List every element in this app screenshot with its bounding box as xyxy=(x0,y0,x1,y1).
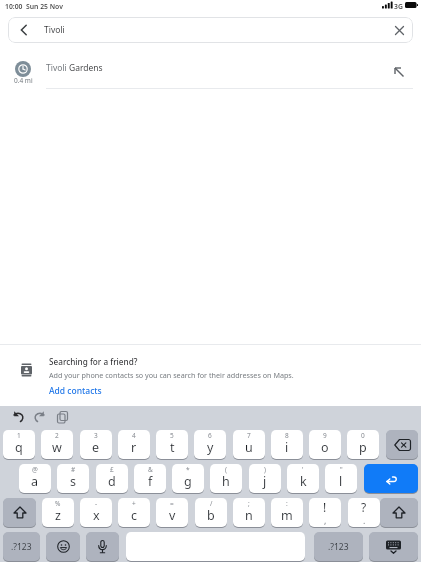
staticText: p xyxy=(359,439,367,456)
staticText: u xyxy=(245,439,253,456)
staticText: m xyxy=(281,507,293,524)
staticText: b xyxy=(207,507,215,524)
staticText: * xyxy=(186,465,190,474)
staticText: i xyxy=(285,439,289,456)
button[interactable]: 5 xyxy=(156,430,188,459)
button[interactable] xyxy=(33,410,47,424)
button[interactable]: ; xyxy=(233,498,265,527)
button[interactable] xyxy=(369,532,418,561)
button[interactable]: " xyxy=(325,464,357,493)
staticText: a xyxy=(31,473,39,490)
button[interactable] xyxy=(3,498,36,527)
staticText: Tivoli xyxy=(44,24,65,36)
staticText: 3G xyxy=(394,2,403,11)
staticText: 0 xyxy=(361,431,365,440)
staticText: z xyxy=(55,507,61,524)
button[interactable]: - xyxy=(80,498,112,527)
button[interactable] xyxy=(380,498,418,527)
staticText: n xyxy=(245,507,253,524)
button[interactable]: Add contacts xyxy=(49,383,102,395)
staticText: # xyxy=(71,465,76,474)
staticText: s xyxy=(70,473,76,490)
button[interactable]: / xyxy=(195,498,227,527)
staticText: " xyxy=(340,465,343,474)
staticText: x xyxy=(93,507,100,524)
button[interactable]: ( xyxy=(210,464,242,493)
staticText: ; xyxy=(248,499,250,508)
staticText: f xyxy=(148,473,153,490)
button[interactable]: @ xyxy=(19,464,51,493)
staticText: .?123 xyxy=(11,541,32,553)
staticText: v xyxy=(169,507,176,524)
button[interactable]: 4 xyxy=(118,430,150,459)
staticText: ! xyxy=(323,499,327,515)
staticText: Add your phone contacts so you can searc… xyxy=(49,370,294,380)
button[interactable] xyxy=(364,464,418,493)
button[interactable]: 9 xyxy=(309,430,341,459)
button[interactable]: % xyxy=(42,498,74,527)
staticText: 8 xyxy=(285,431,289,440)
button[interactable] xyxy=(86,532,119,561)
staticText: ? xyxy=(361,499,367,515)
staticText: ) xyxy=(264,465,266,474)
button[interactable]: 1 xyxy=(3,430,35,459)
staticText: t xyxy=(170,439,175,456)
button[interactable]: : xyxy=(271,498,303,527)
staticText: 1 xyxy=(17,431,21,440)
button[interactable]: 2 xyxy=(41,430,73,459)
staticText: @ xyxy=(32,465,38,474)
button[interactable]: * xyxy=(172,464,204,493)
staticText: 5 xyxy=(170,431,174,440)
button[interactable]: ) xyxy=(249,464,281,493)
button[interactable]: 0.4 mi xyxy=(0,50,421,88)
button[interactable]: 8 xyxy=(271,430,303,459)
button[interactable] xyxy=(126,532,305,561)
staticText: o xyxy=(321,439,329,456)
staticText: £ xyxy=(110,465,114,474)
button[interactable]: + xyxy=(118,498,150,527)
staticText: : xyxy=(286,499,288,508)
button[interactable] xyxy=(11,410,25,424)
staticText: 6 xyxy=(208,431,212,440)
button[interactable]: Tivoli xyxy=(8,17,413,43)
staticText: = xyxy=(170,499,174,508)
staticText: .?123 xyxy=(328,541,349,553)
button[interactable]: ' xyxy=(287,464,319,493)
button[interactable]: # xyxy=(57,464,89,493)
staticText: / xyxy=(210,499,213,508)
staticText: 7 xyxy=(247,431,251,440)
button[interactable]: 6 xyxy=(194,430,226,459)
button[interactable]: £ xyxy=(96,464,128,493)
staticText: % xyxy=(55,499,61,508)
staticText: 10:00 xyxy=(5,2,23,11)
button[interactable]: & xyxy=(134,464,166,493)
staticText: ( xyxy=(225,465,227,474)
staticText: - xyxy=(95,499,98,508)
button[interactable]: 7 xyxy=(233,430,265,459)
staticText: ' xyxy=(302,465,304,474)
button[interactable]: 3 xyxy=(80,430,112,459)
staticText: 0.4 mi xyxy=(14,76,33,85)
staticText: . xyxy=(363,514,366,526)
button[interactable]: .?123 xyxy=(3,532,40,561)
staticText: 9 xyxy=(323,431,327,440)
staticText: + xyxy=(132,499,136,508)
button[interactable] xyxy=(394,25,405,36)
button[interactable]: ? xyxy=(348,498,380,527)
staticText: w xyxy=(52,439,62,456)
button[interactable] xyxy=(46,532,80,561)
button[interactable] xyxy=(386,430,418,459)
staticText: l xyxy=(339,473,343,490)
button[interactable]: = xyxy=(156,498,188,527)
staticText: Add contacts xyxy=(49,385,102,397)
button[interactable]: .?123 xyxy=(314,532,363,561)
staticText: e xyxy=(92,439,100,456)
button[interactable]: ! xyxy=(309,498,341,527)
button[interactable] xyxy=(393,66,405,78)
staticText: d xyxy=(108,473,116,490)
staticText: & xyxy=(148,465,153,474)
staticText: , xyxy=(324,514,327,526)
button[interactable]: 0 xyxy=(347,430,379,459)
staticText: q xyxy=(15,439,23,456)
button[interactable] xyxy=(56,410,70,424)
